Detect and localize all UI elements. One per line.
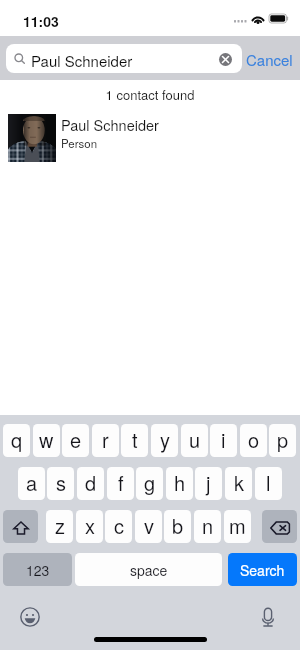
button[interactable]: space [75, 553, 222, 586]
staticText: s [56, 468, 66, 497]
button[interactable]: p [269, 424, 296, 457]
button[interactable]: Shift [3, 510, 38, 543]
button[interactable]: e [62, 424, 89, 457]
staticText: r [102, 425, 109, 454]
staticText: i [221, 425, 226, 454]
staticText: Paul Schneider [31, 50, 133, 71]
staticText: space [130, 560, 168, 580]
staticText: c [114, 511, 124, 540]
staticText: h [174, 468, 186, 497]
button[interactable]: z [46, 510, 73, 543]
staticText: n [202, 511, 214, 540]
staticText: Paul Schneider [61, 114, 159, 135]
button[interactable]: w [33, 424, 60, 457]
button[interactable]: Backspace [262, 510, 297, 543]
staticText: t [132, 425, 138, 454]
staticText: k [234, 468, 244, 497]
staticText: 1 contact found [0, 85, 300, 104]
button[interactable]: g [136, 467, 163, 500]
button[interactable]: Search [228, 553, 297, 586]
staticText: l [266, 468, 271, 497]
button[interactable]: t [121, 424, 148, 457]
button[interactable]: a [18, 467, 45, 500]
button[interactable]: k [225, 467, 252, 500]
staticText: x [85, 511, 95, 540]
button[interactable]: Cancel [246, 36, 300, 80]
button[interactable]: Paul Schneider [0, 108, 300, 170]
button[interactable]: Dictate [259, 606, 277, 628]
button[interactable]: u [181, 424, 208, 457]
button[interactable]: i [210, 424, 237, 457]
staticText: Person [61, 135, 98, 151]
button[interactable]: Clear text [213, 47, 237, 71]
button[interactable]: b [164, 510, 191, 543]
button[interactable]: h [166, 467, 193, 500]
button[interactable]: Paul Schneider [6, 44, 242, 73]
button[interactable]: x [76, 510, 103, 543]
staticText: y [160, 425, 170, 454]
staticText: j [206, 468, 211, 497]
staticText: e [70, 425, 82, 454]
staticText: b [172, 511, 184, 540]
button[interactable]: f [107, 467, 134, 500]
button[interactable]: v [135, 510, 162, 543]
staticText: f [118, 468, 124, 497]
button[interactable]: m [224, 510, 251, 543]
staticText: u [189, 425, 201, 454]
button[interactable]: Emoji [20, 607, 40, 627]
button[interactable]: n [194, 510, 221, 543]
staticText: a [26, 468, 38, 497]
button[interactable]: c [105, 510, 132, 543]
staticText: q [11, 425, 23, 454]
button[interactable]: q [3, 424, 30, 457]
staticText: o [248, 425, 260, 454]
staticText: Search [240, 560, 285, 580]
button[interactable]: s [47, 467, 74, 500]
staticText: g [144, 468, 156, 497]
button[interactable]: r [92, 424, 119, 457]
staticText: w [39, 425, 54, 454]
staticText: Cancel [246, 49, 293, 70]
staticText: 11:03 [23, 11, 59, 31]
button[interactable]: j [195, 467, 222, 500]
button[interactable]: l [255, 467, 282, 500]
staticText: p [277, 425, 289, 454]
staticText: z [55, 511, 65, 540]
staticText: v [144, 511, 154, 540]
button[interactable]: d [77, 467, 104, 500]
staticText: m [229, 511, 246, 540]
staticText: 123 [26, 560, 50, 580]
staticText: d [85, 468, 97, 497]
button[interactable]: o [240, 424, 267, 457]
button[interactable]: 123 [3, 553, 72, 586]
button[interactable]: y [151, 424, 178, 457]
